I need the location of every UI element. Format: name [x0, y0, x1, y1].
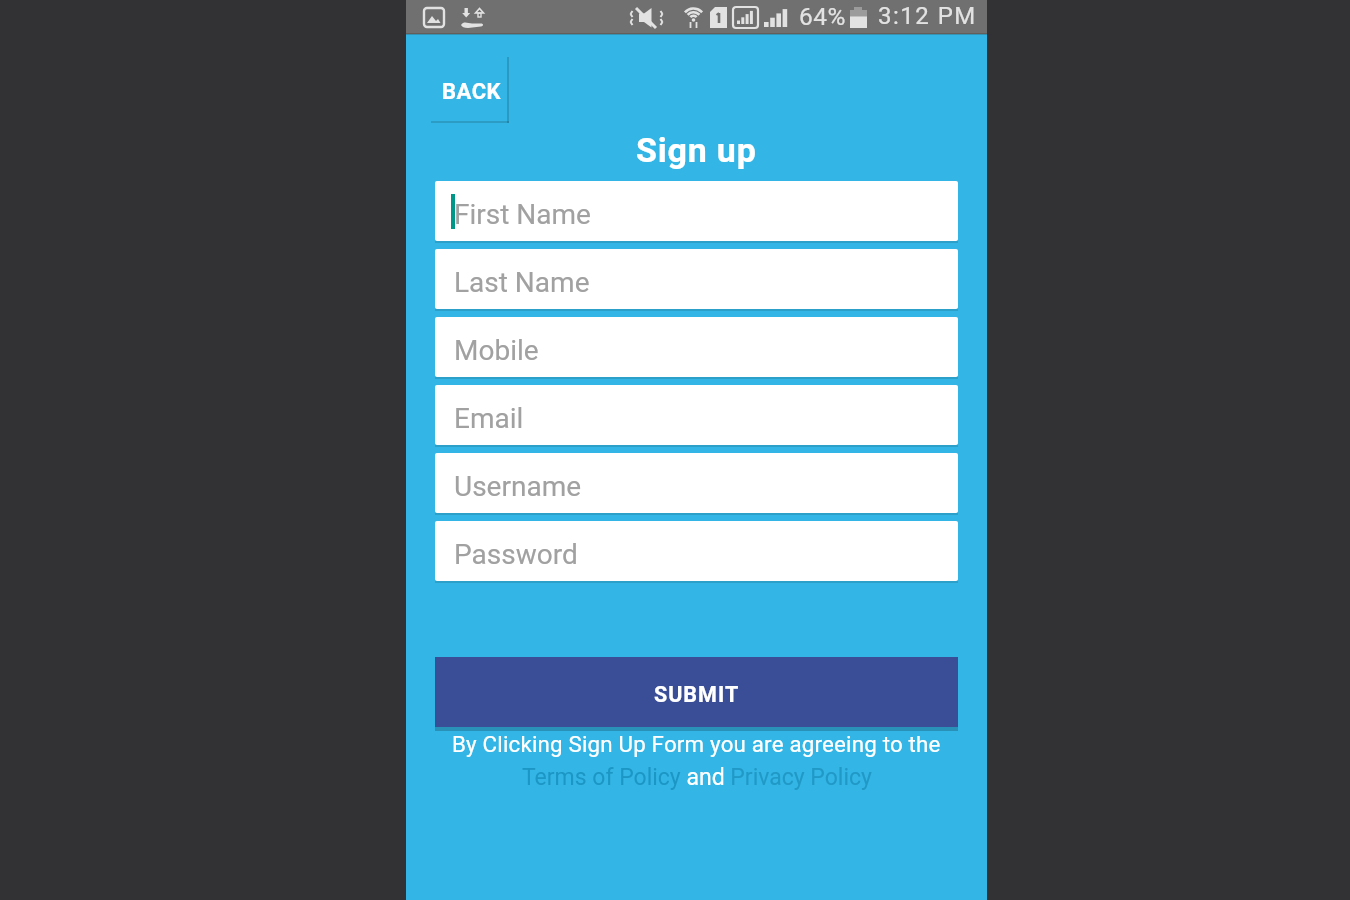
staticText: Username [454, 470, 582, 503]
staticText: Last Name [454, 266, 590, 299]
button[interactable]: First Name [435, 181, 958, 241]
staticText: Sign up [636, 130, 757, 170]
button[interactable]: Email [435, 385, 958, 445]
staticText: SUBMIT [654, 682, 740, 707]
button[interactable]: Password [435, 521, 958, 581]
staticText: 3:12 PM [878, 2, 977, 30]
button[interactable]: Username [435, 453, 958, 513]
button[interactable]: Last Name [435, 249, 958, 309]
staticText: Email [454, 402, 524, 435]
button[interactable]: SUBMIT [435, 657, 958, 727]
staticText: Mobile [454, 334, 539, 367]
button[interactable]: Mobile [435, 317, 958, 377]
staticText: First Name [454, 198, 591, 231]
staticText: Terms of Policy and Privacy Policy [522, 764, 872, 791]
staticText: By Clicking Sign Up Form you are agreein… [452, 731, 941, 757]
button[interactable]: Terms of Policy and Privacy Policy [406, 764, 987, 791]
staticText: 64% [799, 2, 846, 31]
staticText: BACK [442, 79, 502, 105]
staticText: Password [454, 538, 578, 571]
button[interactable]: BACK [431, 56, 509, 123]
